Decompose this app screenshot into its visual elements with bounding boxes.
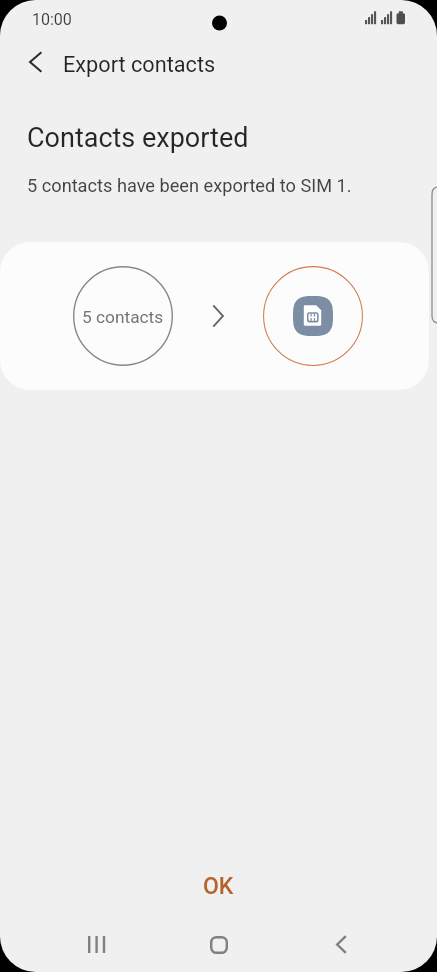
staticText: 5 contacts have been exported to SIM 1. bbox=[27, 175, 352, 196]
button[interactable]: Navigate up bbox=[14, 39, 60, 85]
staticText: Export contacts bbox=[63, 52, 216, 77]
staticText: 10:00 bbox=[32, 10, 72, 29]
staticText: OK bbox=[203, 873, 234, 900]
button[interactable]: Home bbox=[180, 917, 258, 972]
staticText: Contacts exported bbox=[27, 122, 249, 154]
button[interactable]: Recent apps bbox=[58, 917, 136, 972]
button[interactable]: Back bbox=[302, 917, 380, 972]
staticText: 5 contacts bbox=[82, 307, 164, 327]
button[interactable]: OK bbox=[0, 864, 437, 908]
